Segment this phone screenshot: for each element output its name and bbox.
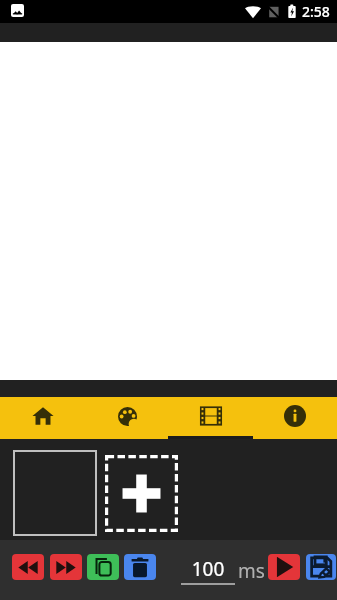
button[interactable]: Colors: [85, 397, 169, 439]
staticText: 100: [181, 556, 235, 582]
staticText: ms: [238, 558, 265, 584]
button[interactable]: Delete frame: [124, 554, 156, 580]
button[interactable]: 100: [181, 556, 235, 585]
button[interactable]: Duplicate frame: [87, 554, 119, 580]
button[interactable]: Add frame: [105, 455, 178, 532]
button[interactable]: Play animation: [268, 554, 300, 580]
staticText: 2:58: [302, 2, 330, 21]
button[interactable]: Rewind: [12, 554, 44, 580]
button[interactable]: Save: [306, 554, 336, 580]
button[interactable]: Frame 1: [13, 450, 97, 536]
button[interactable]: Frames: [169, 397, 253, 439]
button[interactable]: Fast forward: [50, 554, 82, 580]
button[interactable]: Home: [0, 397, 85, 439]
button[interactable]: Info: [253, 397, 337, 439]
